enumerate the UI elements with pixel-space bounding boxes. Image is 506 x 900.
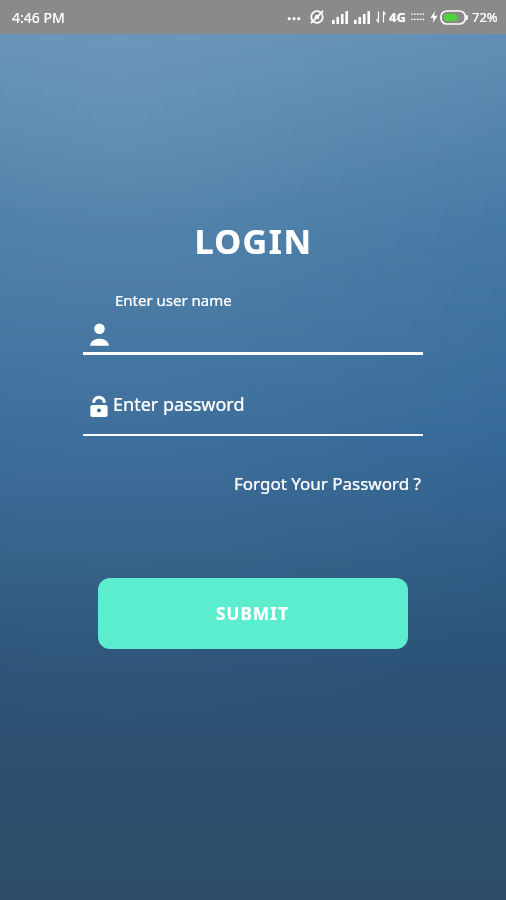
button[interactable]: Enter password: [83, 392, 423, 436]
button[interactable]: Enter user name: [83, 290, 423, 365]
button[interactable]: SUBMIT: [98, 578, 408, 649]
staticText: 4:46 PM: [12, 8, 65, 27]
staticText: 4G: [389, 8, 406, 26]
staticText: 72%: [472, 8, 498, 26]
staticText: Enter password: [113, 392, 245, 417]
staticText: LOGIN: [194, 218, 313, 264]
staticText: Forgot Your Password ?: [234, 472, 421, 495]
button[interactable]: Forgot Your Password ?: [232, 468, 423, 499]
staticText: Enter user name: [115, 290, 232, 310]
staticText: SUBMIT: [216, 602, 290, 625]
